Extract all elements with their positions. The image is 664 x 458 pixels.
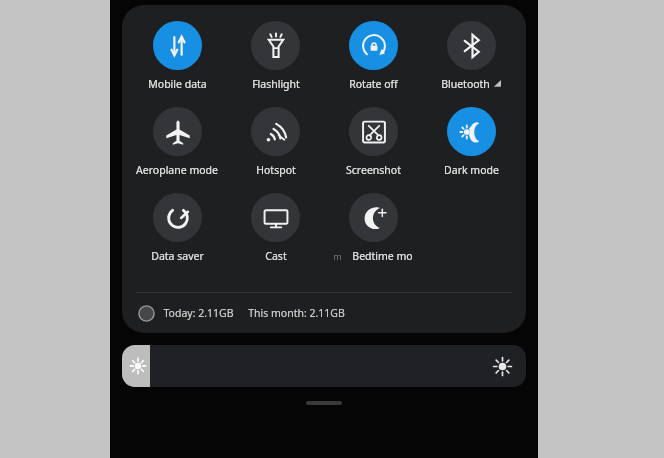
staticText: This month: 2.11GB — [248, 306, 345, 320]
staticText: Mobile data — [148, 77, 207, 91]
button[interactable]: Dark mode — [442, 105, 501, 179]
button[interactable]: Brightness — [122, 345, 526, 387]
staticText: Bluetooth — [441, 77, 490, 91]
button[interactable]: Screenshot — [344, 105, 403, 179]
button[interactable]: Data saver — [149, 191, 206, 265]
staticText: Bedtime mo — [352, 249, 413, 263]
button[interactable]: Mobile data — [146, 19, 209, 93]
staticText: Screenshot — [346, 163, 401, 177]
button[interactable]: Rotate off — [347, 19, 400, 93]
button[interactable]: Today: 2.11GB — [122, 293, 526, 333]
staticText: Cast — [265, 249, 287, 263]
staticText: Data saver — [151, 249, 204, 263]
staticText: Rotate off — [349, 77, 398, 91]
button[interactable]: Flashlight — [249, 19, 302, 93]
button[interactable]: Cast — [249, 191, 302, 265]
button[interactable]: Aeroplane mode — [134, 105, 220, 179]
staticText: Flashlight — [252, 77, 300, 91]
staticText: Today: 2.11GB — [163, 306, 234, 320]
button[interactable]: Hotspot — [249, 105, 302, 179]
button[interactable]: Bluetooth — [439, 19, 503, 93]
staticText: Hotspot — [256, 163, 296, 177]
staticText: m — [333, 250, 342, 262]
staticText: Aeroplane mode — [136, 163, 218, 177]
button[interactable]: m — [331, 191, 415, 265]
staticText: Dark mode — [444, 163, 499, 177]
